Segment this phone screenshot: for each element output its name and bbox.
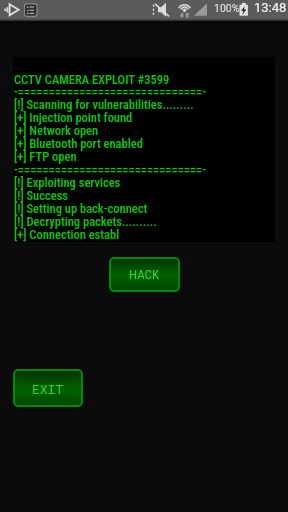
staticText: 100% <box>214 2 240 14</box>
button[interactable]: EXIT <box>13 369 83 407</box>
staticText: CCTV CAMERA EXPLOIT #3599 -=============… <box>14 72 207 242</box>
staticText: EXIT <box>32 380 64 397</box>
staticText: HACK <box>129 267 160 282</box>
button[interactable]: HACK <box>109 257 180 292</box>
staticText: 13:48 <box>254 0 287 15</box>
button[interactable]: CCTV CAMERA EXPLOIT #3599 -=============… <box>13 57 275 242</box>
